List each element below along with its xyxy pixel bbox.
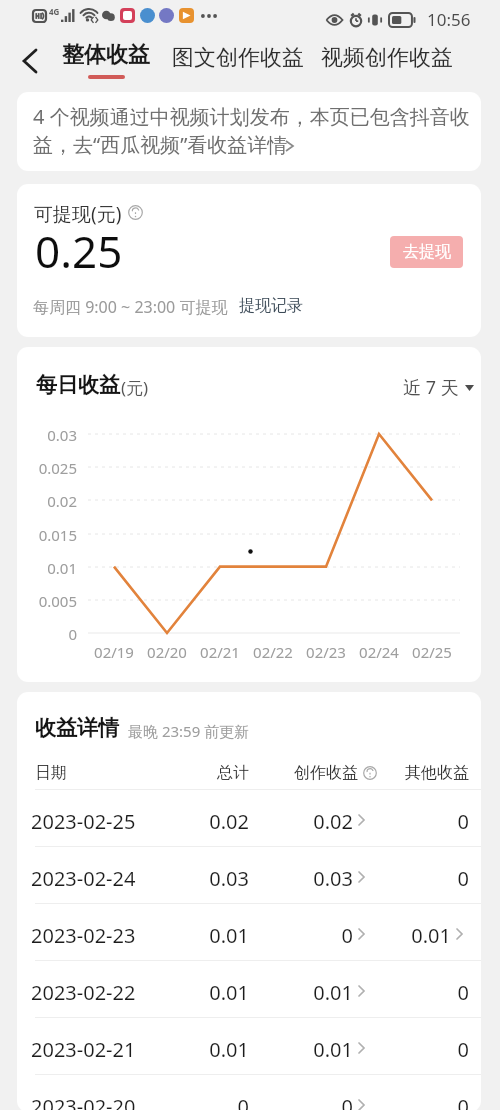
staticText: 0.01 [149,979,249,1006]
button[interactable]: 2023-02-21 [17,1018,481,1075]
staticText: 02/20 [137,642,197,662]
staticText: 每周四 9:00 ~ 23:00 可提现 [33,296,228,318]
staticText: 0.01 [17,558,77,578]
staticText: 2023-02-25 [31,808,136,835]
staticText: 视频创作收益 [321,44,453,72]
staticText: 02/19 [84,642,144,662]
staticText: 02/24 [349,642,409,662]
staticText: 0.015 [17,525,77,545]
staticText: 4 个视频通过中视频计划发布，本页已包含抖音收 [33,103,470,130]
staticText: 0.01 [336,922,451,949]
staticText: 0 [354,979,469,1006]
staticText: 0.02 [253,808,353,835]
staticText: 02/23 [296,642,356,662]
staticText: 10:56 [427,8,471,31]
staticText: 2023-02-22 [31,979,136,1006]
staticText: 0 [354,865,469,892]
staticText: 日期 [35,763,67,783]
staticText: 2023-02-20 [31,1093,136,1110]
staticText: 02/22 [243,642,303,662]
button[interactable]: 提现记录 [237,294,305,318]
staticText: 0 [17,624,77,644]
button[interactable]: 2023-02-25 [17,790,481,847]
staticText: 图文创作收益 [172,44,304,72]
button[interactable]: 视频创作收益 [321,42,453,74]
staticText: 02/21 [190,642,250,662]
staticText: 0 [253,922,353,949]
staticText: 2023-02-21 [31,1036,136,1063]
staticText: 0.01 [149,1036,249,1063]
staticText: 0.02 [17,491,77,511]
staticText: 0.03 [253,865,353,892]
staticText: 其他收益 [369,763,469,783]
button[interactable]: 图文创作收益 [172,42,304,74]
button[interactable]: 4 个视频通过中视频计划发布，本页已包含抖音收 [17,92,481,171]
staticText: 0.005 [17,591,77,611]
staticText: 0.02 [149,808,249,835]
staticText: 0.01 [253,1036,353,1063]
staticText: 0.25 [35,221,123,281]
button[interactable]: 去提现 [390,236,463,268]
staticText: 0.01 [253,979,353,1006]
button[interactable]: 近 7 天 [401,373,476,402]
staticText: 2023-02-23 [31,922,136,949]
staticText: 0 [253,1093,353,1110]
staticText: 总计 [149,763,249,783]
staticText: 可提现(元) [34,201,122,227]
staticText: 4G [49,6,60,17]
staticText: 去提现 [403,242,451,262]
staticText: 益，去“西瓜视频”看收益详情 [33,131,288,158]
staticText: 0.03 [149,865,249,892]
staticText: 创作收益 [258,763,358,783]
staticText: 提现记录 [239,296,303,316]
button[interactable]: 2023-02-22 [17,961,481,1018]
staticText: 0.025 [17,458,77,478]
button[interactable]: 2023-02-23 [17,904,481,961]
staticText: 02/25 [402,642,462,662]
staticText: 每日收益 [36,372,120,398]
button[interactable]: Back [3,42,57,80]
staticText: (元) [121,376,149,399]
staticText: 0.03 [17,425,77,445]
button[interactable]: 整体收益 [62,41,150,79]
staticText: 0 [354,1093,469,1110]
staticText: 整体收益 [62,41,150,69]
staticText: 0 [354,808,469,835]
staticText: 收益详情 [35,715,119,741]
button[interactable]: 2023-02-20 [17,1075,481,1110]
staticText: 近 7 天 [403,375,459,400]
staticText: 0 [354,1036,469,1063]
staticText: 0.01 [149,922,249,949]
button[interactable]: 2023-02-24 [17,847,481,904]
staticText: 最晚 23:59 前更新 [128,721,250,741]
staticText: 2023-02-24 [31,865,136,892]
staticText: 0 [149,1093,249,1110]
